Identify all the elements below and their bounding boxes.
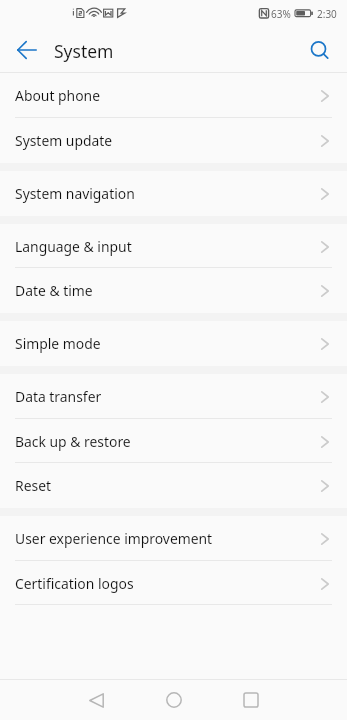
button[interactable]: Certification logos xyxy=(0,561,347,606)
staticText: Back up & restore xyxy=(15,432,131,451)
button[interactable]: About phone xyxy=(0,73,347,118)
staticText: System update xyxy=(15,131,113,150)
button[interactable]: System update xyxy=(0,118,347,163)
button[interactable]: Simple mode xyxy=(0,321,347,366)
staticText: Certification logos xyxy=(15,574,134,593)
button[interactable]: Recents xyxy=(223,680,279,720)
staticText: About phone xyxy=(15,86,100,105)
staticText: 2:30 xyxy=(317,7,337,21)
button[interactable]: Reset xyxy=(0,463,347,508)
staticText: Simple mode xyxy=(15,334,101,353)
staticText: Date & time xyxy=(15,281,93,300)
staticText: User experience improvement xyxy=(15,529,213,548)
staticText: Language & input xyxy=(15,237,132,256)
button[interactable]: Home xyxy=(146,680,202,720)
button[interactable]: Back xyxy=(5,28,49,72)
button[interactable]: Back up & restore xyxy=(0,419,347,464)
button[interactable]: Language & input xyxy=(0,224,347,269)
button[interactable]: Back xyxy=(68,680,124,720)
staticText: System xyxy=(54,39,114,63)
button[interactable]: System navigation xyxy=(0,171,347,216)
staticText: 63% xyxy=(271,7,291,21)
button[interactable]: User experience improvement xyxy=(0,516,347,561)
staticText: Data transfer xyxy=(15,387,102,406)
button[interactable]: Data transfer xyxy=(0,374,347,419)
button[interactable]: Date & time xyxy=(0,268,347,313)
staticText: System navigation xyxy=(15,184,135,203)
button[interactable]: Search xyxy=(299,29,343,73)
staticText: Reset xyxy=(15,476,51,495)
